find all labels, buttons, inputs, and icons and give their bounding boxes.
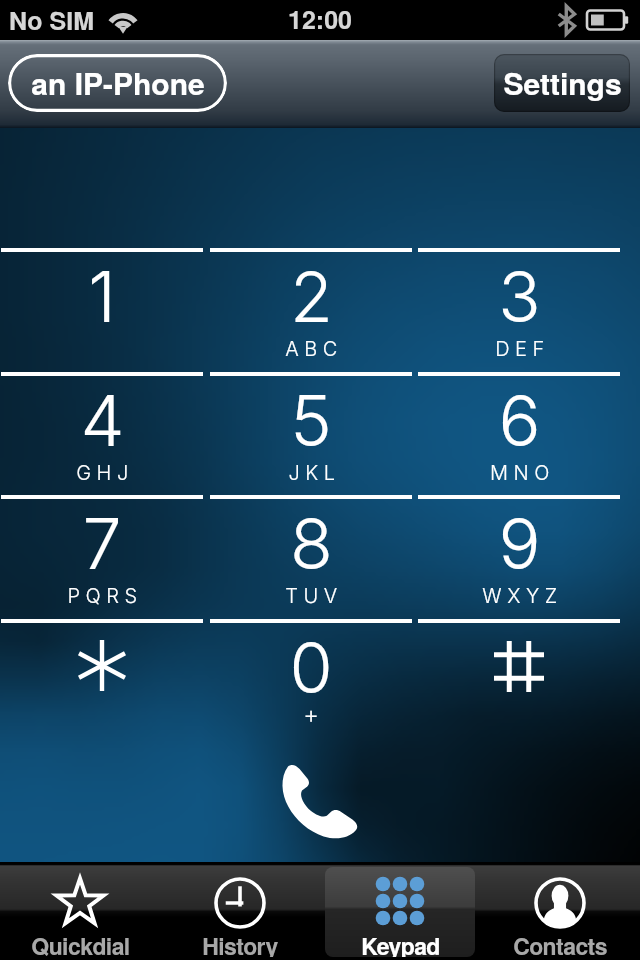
staticText: Contacts <box>513 929 607 957</box>
staticText: 0 <box>289 625 333 710</box>
button[interactable]: 6 <box>418 372 620 496</box>
staticText: History <box>202 929 278 957</box>
staticText: 7 <box>82 501 122 586</box>
staticText: Keypad <box>361 929 440 957</box>
other: Keypad <box>376 877 424 925</box>
button[interactable]: 5 <box>210 372 412 496</box>
button[interactable]: 4 <box>1 372 203 496</box>
button[interactable]: History <box>165 867 315 957</box>
button[interactable]: 0 <box>210 619 412 743</box>
staticText: + <box>303 700 319 729</box>
button[interactable]: an IP-Phone <box>8 54 227 112</box>
button[interactable]: # <box>418 619 620 743</box>
staticText: MNO <box>490 461 555 485</box>
staticText: DEF <box>495 337 550 361</box>
staticText: 6 <box>498 378 541 463</box>
other: Battery <box>587 10 629 30</box>
button[interactable]: Quickdial <box>5 867 155 957</box>
other: Wi-Fi <box>107 8 139 32</box>
button[interactable]: Call <box>265 754 375 850</box>
staticText: 9 <box>498 501 541 586</box>
button[interactable]: 2 <box>210 248 412 372</box>
button[interactable]: 3 <box>418 248 620 372</box>
staticText: Settings <box>503 61 622 104</box>
other: History <box>214 877 266 929</box>
staticText: No SIM <box>9 2 94 38</box>
staticText: WXYZ <box>482 584 563 608</box>
staticText: PQRS <box>67 584 143 608</box>
staticText: GHJ <box>76 461 134 485</box>
staticText: 3 <box>498 254 541 339</box>
button[interactable]: 8 <box>210 495 412 619</box>
button[interactable]: 1 <box>1 248 203 372</box>
staticText: 8 <box>290 501 333 586</box>
button[interactable]: * <box>1 619 203 743</box>
staticText: JKL <box>288 461 341 485</box>
staticText: 5 <box>290 378 332 463</box>
other: Contacts <box>534 877 586 929</box>
staticText: 2 <box>290 254 333 339</box>
staticText: 4 <box>80 378 125 463</box>
button[interactable]: Contacts <box>485 867 635 957</box>
button[interactable]: 9 <box>418 495 620 619</box>
other: Bluetooth <box>558 6 576 34</box>
button[interactable]: Settings <box>494 54 630 112</box>
staticText: TUV <box>285 584 343 608</box>
other: Quickdial <box>55 877 105 925</box>
staticText: ABC <box>285 337 343 361</box>
button[interactable]: Keypad <box>325 867 475 957</box>
button[interactable]: 7 <box>1 495 203 619</box>
staticText: an IP-Phone <box>31 61 205 104</box>
staticText: Quickdial <box>31 929 130 957</box>
staticText: 12:00 <box>288 1 352 37</box>
staticText: 1 <box>88 254 116 339</box>
